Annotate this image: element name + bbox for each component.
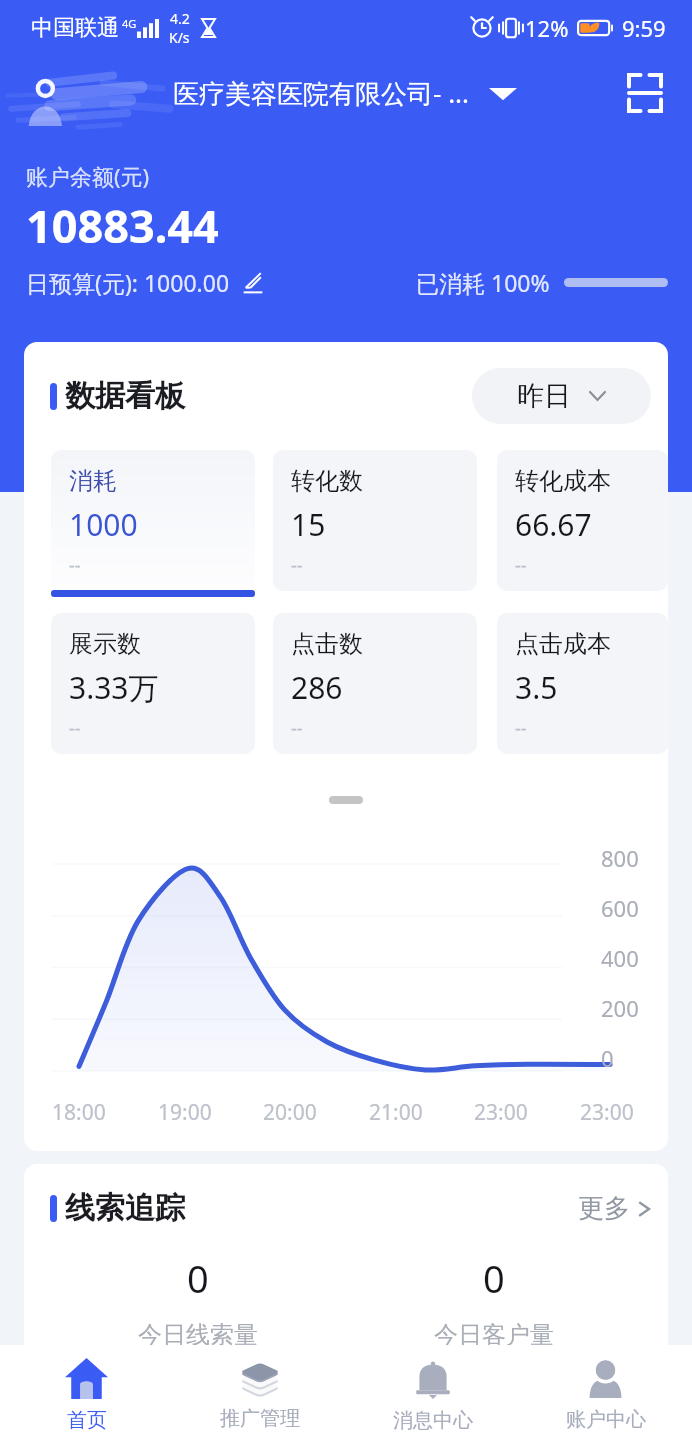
staticText: 已消耗 100% <box>416 267 550 298</box>
staticText: 0 <box>601 1043 614 1073</box>
staticText: 今日线索量 <box>138 1320 258 1350</box>
button[interactable]: 点击成本 <box>497 613 668 754</box>
button[interactable]: 0 <box>346 1252 642 1350</box>
button[interactable]: 转化成本 <box>497 450 668 591</box>
staticText: 日预算(元): 1000.00 <box>26 267 230 298</box>
staticText: 3.5 <box>515 667 558 708</box>
button[interactable]: 消息中心 <box>346 1345 519 1440</box>
staticText: 15 <box>291 504 326 545</box>
staticText: 66.67 <box>515 504 592 545</box>
staticText: -- <box>515 716 527 741</box>
staticText: 点击成本 <box>515 629 611 659</box>
staticText: 推广管理 <box>220 1406 300 1431</box>
staticText: 消耗 <box>69 466 117 496</box>
button[interactable]: 昨日 <box>472 368 651 424</box>
staticText: 账户余额(元) <box>26 161 150 191</box>
staticText: 286 <box>291 667 343 708</box>
staticText: -- <box>291 553 303 578</box>
button[interactable]: 0 <box>50 1252 346 1350</box>
staticText: 9:59 <box>622 13 666 43</box>
staticText: 首页 <box>67 1408 107 1433</box>
staticText: 1000 <box>69 504 138 545</box>
staticText: 展示数 <box>69 629 141 659</box>
staticText: 0 <box>187 1252 209 1304</box>
button[interactable]: Edit daily budget <box>240 270 266 296</box>
staticText: 200 <box>601 993 639 1023</box>
staticText: 账户中心 <box>566 1407 646 1432</box>
staticText: 转化数 <box>291 466 363 496</box>
staticText: 0 <box>483 1252 505 1304</box>
staticText: K/s <box>169 28 190 47</box>
staticText: 中国联通 <box>31 14 119 42</box>
staticText: -- <box>69 716 81 741</box>
staticText: 转化成本 <box>515 466 611 496</box>
staticText: 3.33万 <box>69 667 159 708</box>
staticText: 4G <box>122 16 137 31</box>
staticText: 今日客户量 <box>434 1320 554 1350</box>
staticText: 20:00 <box>263 1098 317 1123</box>
button[interactable]: Scan QR code <box>619 67 671 119</box>
staticText: 更多 <box>578 1192 630 1225</box>
staticText: 4.2 <box>170 9 190 28</box>
staticText: 昨日 <box>517 379 571 413</box>
staticText: 600 <box>601 893 639 923</box>
button[interactable]: 点击数 <box>273 613 477 754</box>
staticText: 23:00 <box>474 1098 528 1123</box>
staticText: 线索追踪 <box>65 1189 185 1227</box>
button[interactable]: Switch account <box>486 76 520 110</box>
staticText: -- <box>69 553 81 578</box>
button[interactable]: 账户中心 <box>519 1345 692 1440</box>
staticText: -- <box>515 553 527 578</box>
staticText: 18:00 <box>52 1098 106 1123</box>
staticText: 点击数 <box>291 629 363 659</box>
button[interactable]: 更多 <box>578 1186 651 1231</box>
staticText: 19:00 <box>158 1098 212 1123</box>
button[interactable]: 推广管理 <box>173 1345 346 1440</box>
button[interactable]: 展示数 <box>51 613 255 754</box>
staticText: 医疗美容医院有限公司- ... <box>173 75 470 111</box>
staticText: 10883.44 <box>26 195 219 256</box>
staticText: 12% <box>525 13 569 43</box>
button[interactable]: 消耗 <box>51 450 255 591</box>
button[interactable]: 转化数 <box>273 450 477 591</box>
staticText: 数据看板 <box>65 377 185 415</box>
staticText: -- <box>291 716 303 741</box>
staticText: 消息中心 <box>393 1408 473 1433</box>
staticText: 23:00 <box>580 1098 634 1123</box>
button[interactable]: 首页 <box>0 1345 173 1440</box>
staticText: 800 <box>601 843 639 873</box>
staticText: 21:00 <box>369 1098 423 1123</box>
staticText: 400 <box>601 943 639 973</box>
